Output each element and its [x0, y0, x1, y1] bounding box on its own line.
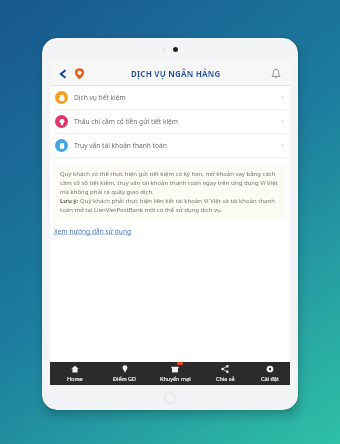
staticText: Home — [67, 375, 83, 382]
button[interactable]: Khuyến mại — [150, 362, 200, 385]
staticText: Quý khách có thể thực hiện gửi tiết kiệm… — [60, 170, 280, 214]
staticText: Truy vấn tài khoản thanh toán — [74, 141, 167, 150]
button[interactable]: Back — [55, 66, 71, 82]
staticText: Điểm GD — [113, 375, 137, 382]
button[interactable]: Home — [50, 362, 100, 385]
button[interactable]: Truy vấn tài khoản thanh toán — [50, 134, 290, 157]
staticText: Thấu chi cầm cố tiền gửi tiết kiệm — [74, 117, 179, 126]
staticText: DỊCH VỤ NGÂN HÀNG — [131, 68, 221, 79]
button[interactable]: Xem hướng dẫn sử dụng — [54, 227, 132, 236]
button[interactable]: Notifications — [267, 65, 285, 83]
staticText: Cài đặt — [261, 375, 279, 382]
button[interactable]: Cài đặt — [250, 362, 290, 385]
button[interactable]: Chia sẻ — [200, 362, 250, 385]
button[interactable]: Thấu chi cầm cố tiền gửi tiết kiệm — [50, 110, 290, 133]
staticText: Chia sẻ — [216, 375, 235, 382]
staticText: Xem hướng dẫn sử dụng — [54, 227, 132, 236]
button[interactable]: Điểm GD — [100, 362, 150, 385]
button[interactable]: Dịch vụ tiết kiệm — [50, 86, 290, 109]
staticText: Khuyến mại — [160, 375, 191, 382]
staticText: Dịch vụ tiết kiệm — [74, 93, 126, 102]
button[interactable]: LienVietPostBank logo — [73, 67, 86, 80]
